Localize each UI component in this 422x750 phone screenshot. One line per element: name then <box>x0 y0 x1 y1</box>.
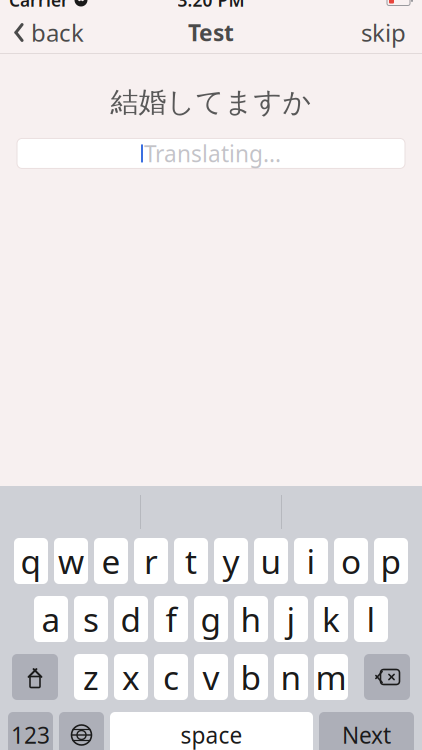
button[interactable]: o <box>334 538 368 584</box>
button[interactable]: k <box>314 596 348 642</box>
button[interactable]: e <box>94 538 128 584</box>
staticText: o <box>341 539 361 583</box>
staticText: w <box>58 539 84 583</box>
staticText: 3:20 PM <box>177 0 244 11</box>
button[interactable]: r <box>134 538 168 584</box>
staticText: r <box>144 539 158 583</box>
button[interactable]: s <box>74 596 108 642</box>
button[interactable]: f <box>154 596 188 642</box>
staticText: i <box>306 539 315 583</box>
staticText: f <box>165 597 176 641</box>
staticText: Test <box>188 17 234 47</box>
button[interactable]: i <box>294 538 328 584</box>
staticText: b <box>240 655 261 699</box>
staticText: n <box>280 655 301 699</box>
staticText: back <box>31 17 84 48</box>
staticText: Translating... <box>144 138 281 168</box>
button[interactable]: t <box>174 538 208 584</box>
button[interactable]: h <box>234 596 268 642</box>
staticText: h <box>240 597 261 641</box>
button[interactable]: g <box>194 596 228 642</box>
button[interactable]: space <box>110 712 313 750</box>
button[interactable]: Next keyboard <box>59 712 104 750</box>
button[interactable]: Shift <box>12 654 58 700</box>
staticText: d <box>120 597 141 641</box>
staticText: z <box>83 655 99 699</box>
staticText: g <box>200 597 221 641</box>
staticText: c <box>163 655 179 699</box>
button[interactable]: y <box>214 538 248 584</box>
button[interactable]: j <box>274 596 308 642</box>
button[interactable]: Delete <box>364 654 410 700</box>
button[interactable]: back <box>0 11 97 54</box>
staticText: k <box>322 597 340 641</box>
button[interactable]: w <box>54 538 88 584</box>
button[interactable]: p <box>374 538 408 584</box>
staticText: l <box>366 597 375 641</box>
staticText: j <box>286 597 295 641</box>
button[interactable]: Next <box>319 712 414 750</box>
staticText: space <box>180 720 242 750</box>
button[interactable]: u <box>254 538 288 584</box>
button[interactable]: skip <box>345 11 422 54</box>
button[interactable]: l <box>354 596 388 642</box>
button[interactable]: c <box>154 654 188 700</box>
staticText: t <box>185 539 197 583</box>
button[interactable]: m <box>314 654 348 700</box>
button[interactable]: x <box>114 654 148 700</box>
staticText: skip <box>361 17 406 48</box>
staticText: u <box>260 539 281 583</box>
button[interactable]: b <box>234 654 268 700</box>
button[interactable]: a <box>34 596 68 642</box>
staticText: x <box>122 655 140 699</box>
staticText: s <box>83 597 99 641</box>
staticText: Carrier <box>9 0 69 11</box>
button[interactable]: 123 <box>8 712 53 750</box>
button[interactable]: d <box>114 596 148 642</box>
staticText: q <box>20 539 41 583</box>
staticText: m <box>315 655 346 699</box>
staticText: 結婚してますか <box>110 85 311 119</box>
staticText: v <box>202 655 219 699</box>
staticText: y <box>222 539 239 583</box>
button[interactable]: z <box>74 654 108 700</box>
button[interactable]: n <box>274 654 308 700</box>
staticText: Next <box>342 720 391 750</box>
staticText: 123 <box>11 720 50 750</box>
button[interactable]: q <box>14 538 48 584</box>
staticText: a <box>41 597 60 641</box>
staticText: e <box>101 539 120 583</box>
button[interactable]: v <box>194 654 228 700</box>
staticText: p <box>380 539 401 583</box>
